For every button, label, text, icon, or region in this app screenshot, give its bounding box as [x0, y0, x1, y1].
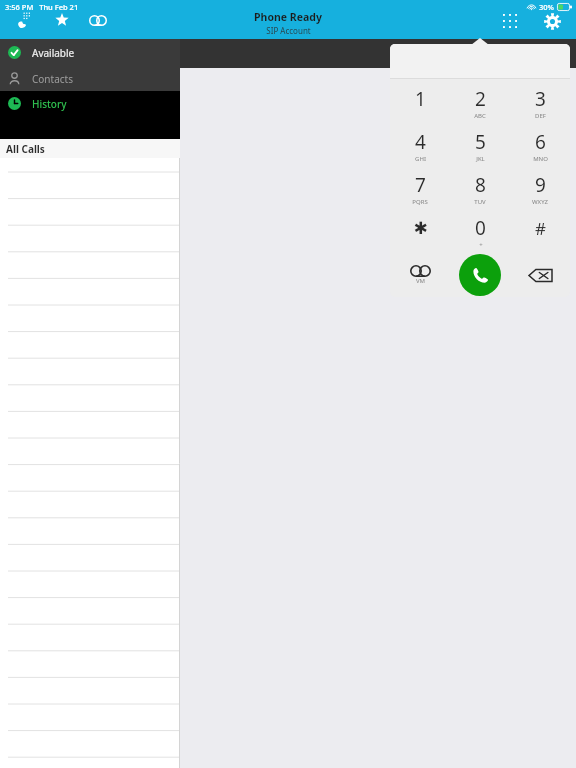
button[interactable]: 2 — [450, 81, 510, 124]
staticText: All Calls — [6, 142, 45, 156]
button[interactable]: Favorites — [48, 6, 76, 34]
staticText: 8 — [475, 172, 486, 198]
staticText: SIP Account — [266, 25, 311, 36]
button[interactable]: Dial pad — [10, 5, 40, 35]
button[interactable]: Backspace — [510, 253, 570, 297]
staticText: 4 — [415, 129, 426, 155]
staticText: 30% — [539, 2, 554, 12]
staticText: VM — [416, 277, 426, 285]
staticText: 3:56 PM Thu Feb 21 — [5, 2, 79, 12]
staticText: + — [479, 241, 483, 249]
staticText: ✱ — [413, 218, 428, 238]
staticText: # — [535, 217, 546, 240]
staticText: Contacts — [32, 72, 73, 86]
button[interactable]: 9 — [510, 167, 570, 210]
staticText: TUV — [474, 198, 486, 206]
staticText: WXYZ — [532, 198, 548, 206]
button[interactable]: 5 — [450, 124, 510, 167]
staticText: Phone Ready — [254, 10, 322, 24]
button[interactable]: # — [510, 210, 570, 253]
staticText: 3 — [535, 86, 546, 112]
staticText: 9 — [535, 172, 546, 198]
staticText: 2 — [475, 86, 486, 112]
staticText: 0 — [475, 215, 486, 241]
staticText: MNO — [533, 155, 548, 163]
button[interactable] — [390, 44, 570, 78]
staticText: 7 — [415, 172, 426, 198]
button[interactable]: All Calls — [0, 139, 180, 158]
button[interactable]: Contacts — [0, 66, 180, 91]
button[interactable]: Available — [0, 39, 180, 66]
button[interactable]: Voicemail — [390, 253, 450, 297]
staticText: JKL — [476, 155, 485, 163]
button[interactable]: Settings — [538, 7, 566, 35]
staticText: GHI — [415, 155, 426, 163]
button[interactable]: 4 — [390, 124, 450, 167]
staticText: History — [32, 97, 67, 111]
button[interactable]: 3 — [510, 81, 570, 124]
button[interactable]: Keypad grid — [496, 7, 524, 35]
button[interactable]: 6 — [510, 124, 570, 167]
staticText: DEF — [535, 112, 546, 120]
button[interactable]: History — [0, 91, 180, 139]
staticText: 6 — [535, 129, 546, 155]
button[interactable]: 8 — [450, 167, 510, 210]
staticText: ABC — [474, 112, 486, 120]
staticText: 5 — [475, 129, 486, 155]
button[interactable]: 7 — [390, 167, 450, 210]
staticText: PQRS — [412, 198, 428, 206]
button[interactable]: ✱ — [390, 210, 450, 253]
button[interactable]: Call — [450, 253, 510, 297]
button[interactable]: 1 — [390, 81, 450, 124]
staticText: Available — [32, 46, 75, 60]
staticText: 1 — [415, 86, 426, 112]
button[interactable]: Voicemail — [84, 6, 112, 34]
button[interactable]: 0 — [450, 210, 510, 253]
